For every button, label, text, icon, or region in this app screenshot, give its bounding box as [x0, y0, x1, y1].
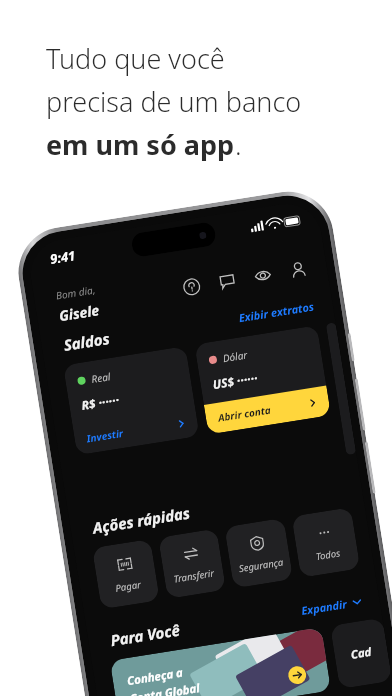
staticText: 9:41	[49, 246, 77, 268]
staticText: Investir	[86, 426, 124, 445]
staticText: Todos	[315, 546, 342, 563]
staticText: Abrir conta	[217, 402, 272, 425]
button[interactable]: Ajuda	[179, 274, 204, 299]
staticText: precisa de um banco	[46, 83, 302, 120]
button[interactable]: Cad	[330, 618, 392, 689]
button[interactable]: Euro	[326, 322, 356, 455]
staticText: Conta Global	[129, 680, 201, 696]
staticText: R$ ······	[80, 391, 120, 413]
staticText: Tudo que você	[46, 40, 225, 77]
button[interactable]: Segurança	[224, 518, 293, 588]
button[interactable]: Perfil	[285, 257, 310, 282]
staticText: Para Você	[109, 619, 181, 650]
staticText: Gisele	[58, 300, 101, 325]
button[interactable]: Abrir conta	[216, 387, 319, 433]
staticText: Cad	[349, 644, 373, 663]
staticText: Ações rápidas	[91, 502, 192, 538]
button[interactable]: Investir	[84, 408, 188, 453]
button[interactable]: Real	[63, 346, 200, 455]
staticText: Saldos	[62, 328, 112, 355]
staticText: Pagar	[114, 578, 142, 595]
button[interactable]: Todos	[291, 507, 360, 578]
button[interactable]: Conheça a	[110, 627, 331, 696]
staticText: em um só app	[46, 126, 235, 163]
button[interactable]: Dólar	[194, 325, 331, 434]
button[interactable]: Exibir extratos	[237, 298, 316, 325]
button[interactable]: Transferir	[158, 528, 226, 599]
staticText: Transferir	[173, 566, 215, 586]
staticText: Conheça a	[126, 664, 185, 689]
staticText: Segurança	[238, 555, 284, 575]
button[interactable]: Pagar	[92, 539, 160, 609]
staticText: Exibir extratos	[237, 298, 316, 325]
staticText: US$ ······	[211, 369, 259, 392]
staticText: Bom dia,	[55, 282, 97, 303]
button[interactable]: Ocultar saldo	[250, 263, 275, 288]
staticText: Dólar	[222, 347, 249, 365]
button[interactable]: Expandir	[300, 594, 363, 618]
button[interactable]: Mensagens	[214, 268, 239, 293]
staticText: Real	[90, 369, 111, 386]
staticText: .	[235, 126, 242, 163]
staticText: Expandir	[300, 596, 349, 618]
